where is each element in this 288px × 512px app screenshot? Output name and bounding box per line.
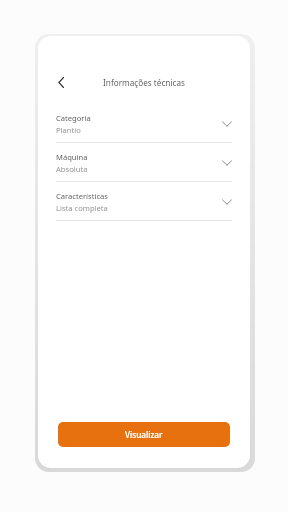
staticText: Características <box>56 191 108 201</box>
staticText: Máquina <box>56 152 88 162</box>
button[interactable]: Categoria <box>56 113 232 143</box>
button[interactable]: Características <box>56 191 232 221</box>
button[interactable]: Voltar <box>53 75 69 89</box>
staticText: Categoria <box>56 113 91 123</box>
button[interactable]: Máquina <box>56 152 232 182</box>
staticText: Visualizar <box>125 429 163 440</box>
button[interactable]: Visualizar <box>58 422 230 447</box>
staticText: Plantio <box>56 125 81 135</box>
staticText: Informações técnicas <box>103 77 185 88</box>
staticText: Absoluta <box>56 164 88 174</box>
staticText: Lista completa <box>56 203 108 213</box>
